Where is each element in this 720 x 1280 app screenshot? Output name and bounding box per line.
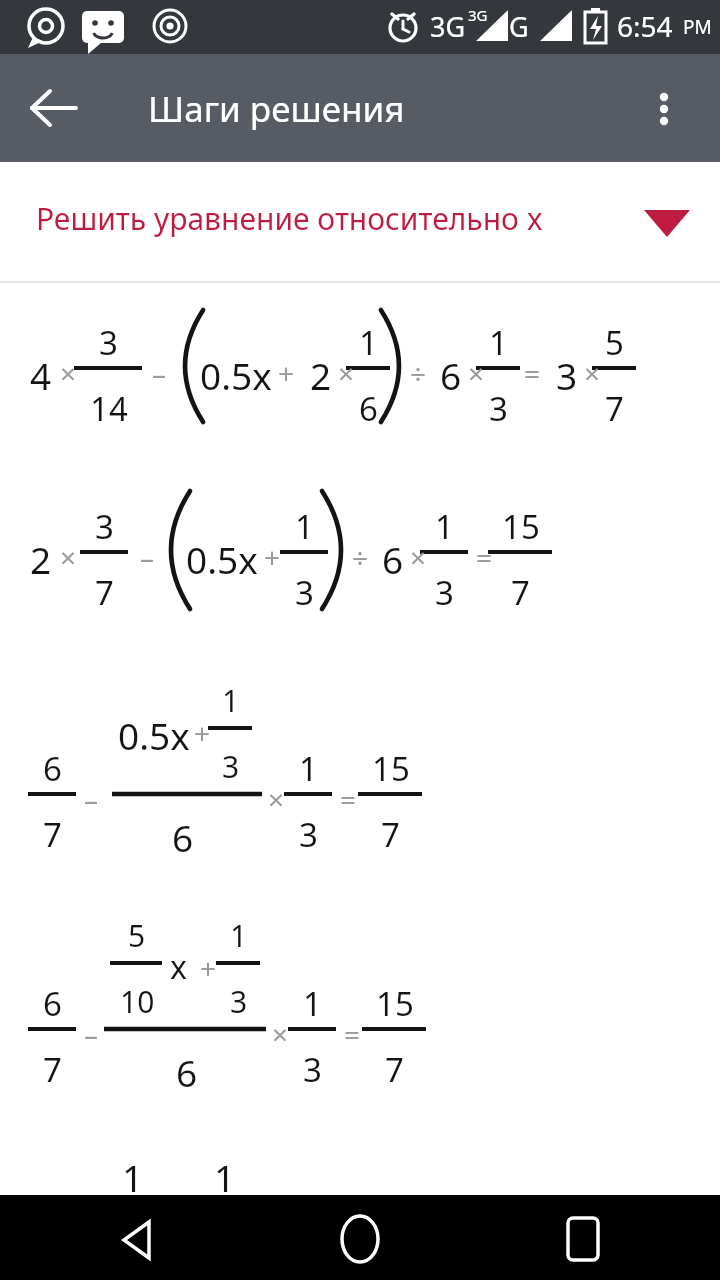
staticText: × bbox=[584, 354, 601, 392]
button[interactable]: Back bbox=[110, 1212, 166, 1268]
staticText: Решить уравнение относительно x bbox=[36, 198, 543, 239]
staticText: 3 bbox=[99, 320, 118, 365]
staticText: 0.5x bbox=[118, 710, 190, 760]
staticText: 1 bbox=[222, 680, 240, 721]
staticText: 3 bbox=[230, 981, 248, 1022]
staticText: 10 bbox=[120, 981, 155, 1022]
staticText: – bbox=[84, 1015, 99, 1053]
staticText: 1 bbox=[214, 1152, 236, 1202]
staticText: × bbox=[60, 354, 77, 392]
staticText: – bbox=[140, 538, 155, 576]
staticText: 3 bbox=[489, 386, 508, 431]
staticText: × bbox=[410, 538, 427, 576]
staticText: 6:54 bbox=[617, 7, 673, 45]
staticText: 5 bbox=[605, 320, 624, 365]
staticText: + bbox=[200, 949, 217, 987]
staticText: 1 bbox=[359, 320, 378, 365]
staticText: 7 bbox=[385, 1047, 404, 1092]
staticText: 7 bbox=[43, 1047, 62, 1092]
button[interactable]: Back bbox=[24, 84, 72, 132]
staticText: 6 bbox=[382, 534, 404, 584]
staticText: + bbox=[194, 714, 211, 752]
staticText: ÷ bbox=[410, 354, 427, 392]
staticText: 3 bbox=[222, 746, 240, 787]
staticText: × bbox=[468, 354, 485, 392]
staticText: 2 bbox=[30, 534, 52, 584]
staticText: × bbox=[60, 538, 77, 576]
staticText: = bbox=[344, 1015, 361, 1053]
staticText: 6 bbox=[43, 746, 62, 791]
staticText: 7 bbox=[95, 570, 114, 615]
staticText: 7 bbox=[43, 812, 62, 857]
staticText: 6 bbox=[359, 386, 378, 431]
staticText: 7 bbox=[511, 570, 530, 615]
staticText: 6 bbox=[172, 812, 194, 862]
staticText: 3 bbox=[556, 350, 578, 400]
staticText: 3 bbox=[295, 570, 314, 615]
staticText: 0.5x bbox=[200, 350, 272, 400]
staticText: = bbox=[340, 780, 357, 818]
staticText: 1 bbox=[230, 915, 248, 956]
button[interactable]: Recent apps bbox=[554, 1212, 610, 1268]
staticText: + bbox=[264, 538, 281, 576]
staticText: 15 bbox=[372, 746, 410, 791]
staticText: × bbox=[268, 780, 285, 818]
staticText: 6 bbox=[43, 981, 62, 1026]
staticText: 3 bbox=[299, 812, 318, 857]
button[interactable]: Home bbox=[332, 1212, 388, 1268]
staticText: 5 bbox=[128, 915, 146, 956]
staticText: 3G bbox=[468, 5, 488, 25]
staticText: 15 bbox=[376, 981, 414, 1026]
staticText: 1 bbox=[295, 504, 314, 549]
staticText: 1 bbox=[435, 504, 454, 549]
staticText: = bbox=[524, 354, 541, 392]
staticText: 15 bbox=[502, 504, 540, 549]
staticText: ÷ bbox=[352, 538, 369, 576]
staticText: Шаги решения bbox=[148, 85, 405, 133]
staticText: 1 bbox=[489, 320, 508, 365]
staticText: – bbox=[152, 354, 167, 392]
staticText: 7 bbox=[381, 812, 400, 857]
staticText: × bbox=[272, 1015, 289, 1053]
staticText: 14 bbox=[90, 386, 128, 431]
staticText: 0.5x bbox=[186, 534, 258, 584]
staticText: 6 bbox=[440, 350, 462, 400]
staticText: 1 bbox=[299, 746, 318, 791]
staticText: x bbox=[170, 945, 187, 989]
staticText: 1 bbox=[122, 1152, 144, 1202]
staticText: + bbox=[278, 354, 295, 392]
button[interactable]: Решить уравнение относительно x bbox=[0, 162, 720, 283]
staticText: 7 bbox=[605, 386, 624, 431]
staticText: 3 bbox=[95, 504, 114, 549]
staticText: 4 bbox=[30, 350, 52, 400]
staticText: G bbox=[509, 8, 529, 45]
button[interactable]: More options bbox=[640, 84, 688, 132]
staticText: 6 bbox=[176, 1047, 198, 1097]
staticText: = bbox=[476, 538, 493, 576]
staticText: 3 bbox=[303, 1047, 322, 1092]
staticText: – bbox=[84, 780, 99, 818]
staticText: 2 bbox=[310, 350, 332, 400]
staticText: PM bbox=[683, 14, 712, 40]
staticText: 3 bbox=[435, 570, 454, 615]
staticText: 1 bbox=[303, 981, 322, 1026]
staticText: 3G bbox=[430, 8, 466, 45]
staticText: × bbox=[338, 354, 355, 392]
